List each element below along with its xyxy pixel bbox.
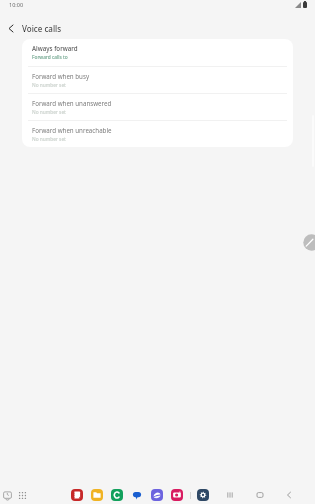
button[interactable]: Samsung Notes (71, 489, 83, 501)
staticText: No number set (32, 136, 66, 143)
button[interactable]: Always forward (22, 39, 293, 66)
staticText: 10:00 (9, 1, 24, 8)
button[interactable]: Home (253, 488, 267, 502)
button[interactable]: Forward when unreachable (22, 120, 293, 147)
staticText: Voice calls (22, 23, 62, 34)
button[interactable]: Back (0, 17, 22, 39)
button[interactable]: My Files (91, 489, 103, 501)
button[interactable]: Forward when busy (22, 66, 293, 93)
button[interactable]: Back (282, 488, 296, 502)
staticText: Forward when busy (32, 72, 90, 80)
button[interactable]: Forward when unanswered (22, 93, 293, 120)
staticText: No number set (32, 109, 66, 116)
button[interactable]: Messages (131, 489, 143, 501)
staticText: Forward when unreachable (32, 126, 112, 134)
staticText: Always forward (32, 44, 78, 52)
staticText: No number set (32, 82, 66, 89)
button[interactable]: Settings (197, 489, 209, 501)
button[interactable]: Camera (171, 489, 183, 501)
button[interactable]: Apps (16, 489, 29, 502)
button[interactable]: Edge panel (302, 234, 315, 251)
button[interactable]: Phone (111, 489, 123, 501)
staticText: Forward calls to (32, 54, 68, 61)
button[interactable]: Recents (223, 488, 237, 502)
button[interactable]: Internet (151, 489, 163, 501)
staticText: Forward when unanswered (32, 99, 112, 107)
button[interactable]: Recent files (1, 489, 14, 502)
